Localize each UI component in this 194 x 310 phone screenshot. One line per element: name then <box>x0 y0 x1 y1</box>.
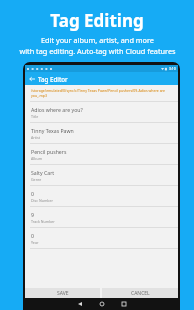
button[interactable]: 9 <box>25 207 178 227</box>
staticText: Tinny Texas Pawn <box>31 127 74 134</box>
staticText: Genre <box>31 177 42 182</box>
button[interactable]: Tinny Texas Pawn <box>25 123 178 143</box>
button[interactable]: Back <box>25 72 38 85</box>
staticText: Title <box>31 114 39 119</box>
button[interactable]: 0 <box>25 186 178 206</box>
staticText: Disc Number <box>31 198 53 203</box>
button[interactable]: 0 <box>25 228 178 248</box>
staticText: with tag editing. Auto-tag with Cloud fe… <box>19 46 176 56</box>
staticText: Edit your album, artist, and more <box>41 35 154 45</box>
staticText: SAVE <box>57 290 69 297</box>
button[interactable]: Back <box>69 298 91 310</box>
staticText: Adios where are you? <box>31 106 83 113</box>
staticText: Track Number <box>31 219 55 224</box>
button[interactable]: Recent apps <box>113 298 135 310</box>
button[interactable]: Home <box>91 298 113 310</box>
staticText: Album <box>31 156 43 161</box>
staticText: CANCEL <box>131 290 150 297</box>
button[interactable]: Adios where are you? <box>25 102 178 122</box>
staticText: 0 <box>31 190 34 197</box>
button[interactable]: CANCEL <box>102 288 178 298</box>
staticText: /storage/emulated/0/sync/c/Tinny Texas P… <box>31 88 165 93</box>
button[interactable]: Salty Cart <box>25 165 178 185</box>
staticText: Pencil pushers <box>31 148 67 155</box>
staticText: Tag Editing <box>50 9 144 32</box>
button[interactable]: Pencil pushers <box>25 144 178 164</box>
button[interactable]: SAVE <box>25 288 100 298</box>
staticText: Artist <box>31 135 41 140</box>
staticText: Year <box>31 240 39 245</box>
staticText: 3:10 <box>169 66 176 71</box>
staticText: 0 <box>31 232 34 239</box>
staticText: you_.mp3 <box>31 93 47 98</box>
staticText: Tag Editor <box>38 75 68 83</box>
staticText: 9 <box>31 211 34 218</box>
staticText: Salty Cart <box>31 169 55 176</box>
